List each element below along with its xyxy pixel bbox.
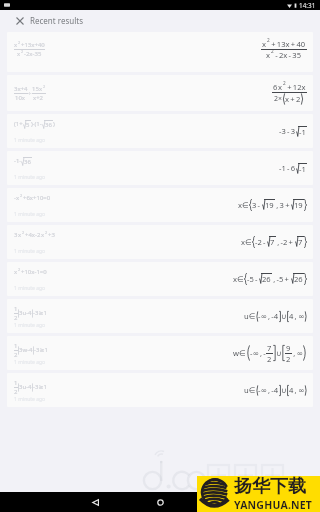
staticText: 2 [283,80,286,86]
button[interactable]: Back [85,492,105,512]
staticText: 2 [18,40,21,45]
staticText: x [262,39,267,49]
staticText: 2 [267,37,270,43]
button[interactable]: Home [150,492,170,512]
staticText: , -2 + [276,237,295,247]
button[interactable]: x [7,262,313,296]
staticText: 26 [262,274,271,284]
staticText: + 12x [286,82,306,92]
staticText: , 3 + [275,200,291,210]
staticText: 4 , ∞ [289,385,305,395]
staticText: 3x+4 [14,85,28,93]
staticText: )·(1- [31,120,42,128]
staticText: x [39,85,43,93]
staticText: 1 minute ago [14,285,46,292]
staticText: 2 [20,193,23,198]
staticText: + 13x + 40 [270,39,306,49]
staticText: 2 [45,230,48,235]
staticText: 2 [14,388,18,396]
button[interactable]: x [7,32,313,72]
staticText: x+2 [33,94,44,102]
staticText: 1 [14,379,18,387]
staticText: +4x-2 [25,231,41,239]
staticText: 2 [286,354,291,364]
staticText: -∞ , - [250,348,266,358]
staticText: 15 [32,85,39,93]
staticText: 扬华下载 [234,475,306,498]
staticText: ÷ [28,89,32,97]
staticText: 1 minute ago [14,396,46,403]
staticText: , ∞ [292,348,303,358]
staticText: 3 [14,231,18,239]
staticText: 2 [21,49,24,54]
staticText: 1 [14,342,18,350]
staticText: x∈ [233,274,244,284]
staticText: x∈ [238,200,249,210]
staticText: 3 - [252,200,262,210]
staticText: 4 , ∞ [289,311,305,321]
staticText: - [14,194,16,202]
staticText: -2 - [255,237,267,247]
staticText: x [278,82,283,92]
button[interactable]: Recents [215,492,235,512]
button[interactable]: 1 [7,373,313,407]
staticText: -3≥1 [34,346,48,354]
staticText: 1 minute ago [14,174,46,181]
staticText: -1 [299,164,306,174]
staticText: +6x+10=0 [23,194,51,202]
staticText: 36 [24,158,31,166]
staticText: 9 [286,343,291,353]
button[interactable]: Close [10,11,30,31]
staticText: -3≥1 [33,383,47,391]
staticText: ∪ [281,312,287,321]
staticText: - 2x - 35 [274,50,301,60]
button[interactable]: 3 [7,225,313,259]
button[interactable]: - [7,188,313,222]
staticText: +10x-1=0 [21,268,47,276]
button[interactable]: (1+ [7,114,313,148]
staticText: 3u-4 [19,383,32,391]
button[interactable]: 1 [7,299,313,333]
staticText: x [18,231,22,239]
staticText: x + 2 [285,94,301,104]
staticText: -1· [14,157,21,165]
staticText: 7 [298,237,303,247]
button[interactable]: 3x+4 [7,75,313,111]
staticText: ) [53,120,55,128]
staticText: x∈ [241,237,252,247]
staticText: -5 - [247,274,259,284]
staticText: x [17,50,21,58]
button[interactable]: 1 [7,336,313,370]
staticText: +3 [48,231,55,239]
staticText: x [16,194,20,202]
staticText: 7 [267,343,272,353]
staticText: ∪ [276,349,282,358]
staticText: Recent results [30,15,83,26]
staticText: -∞ , -4 [258,385,279,395]
staticText: 1 minute ago [14,137,46,144]
staticText: -3≥1 [33,309,47,317]
staticText: 2 [267,354,272,364]
staticText: -2x-35 [24,50,42,58]
staticText: -1 [299,127,306,137]
staticText: 3w-4 [19,346,33,354]
staticText: x [41,231,45,239]
staticText: (1+ [14,120,23,128]
staticText: -1 - 6 [279,163,296,173]
staticText: 1 minute ago [14,322,46,329]
staticText: 19 [294,200,303,210]
staticText: 1 minute ago [14,359,46,366]
staticText: 1 [14,305,18,313]
staticText: x [266,50,271,60]
staticText: YANGHUA.NET [234,498,313,511]
staticText: 2 [18,267,21,272]
staticText: 1 minute ago [14,248,46,255]
staticText: 26 [294,274,303,284]
staticText: 2 [271,48,274,54]
staticText: 5 [26,121,30,129]
staticText: u∈ [244,385,256,395]
button[interactable]: -1· [7,151,313,185]
staticText: -3 - 3 [279,126,296,136]
staticText: 6 [273,82,278,92]
staticText: 1 minute ago [14,211,46,218]
